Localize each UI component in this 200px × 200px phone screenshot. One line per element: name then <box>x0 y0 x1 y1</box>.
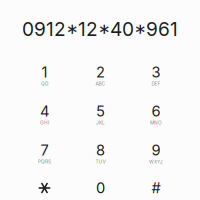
staticText: 6 <box>151 102 160 120</box>
staticText: 0912*12*40*961 <box>22 17 178 41</box>
staticText: PQRS <box>38 159 51 165</box>
staticText: TUV <box>95 159 105 165</box>
staticText: 4 <box>40 102 49 120</box>
staticText: GHI <box>40 120 49 126</box>
button[interactable]: 2 <box>73 57 127 93</box>
staticText: MNO <box>150 120 162 126</box>
button[interactable]: 8 <box>73 135 127 171</box>
staticText: 1 <box>41 63 47 81</box>
staticText: 7 <box>40 141 48 159</box>
button[interactable]: 6 <box>129 96 183 132</box>
staticText: 0 <box>96 179 105 197</box>
button[interactable]: 5 <box>73 96 127 132</box>
button[interactable]: 7 <box>17 135 71 171</box>
staticText: 3 <box>151 63 160 81</box>
staticText: 2 <box>96 63 105 81</box>
button[interactable]: Pound <box>129 176 183 200</box>
button[interactable]: 4 <box>17 96 71 132</box>
button[interactable]: 9 <box>129 135 183 171</box>
button[interactable]: 0912*12*40*961 <box>7 17 193 41</box>
staticText: DEF <box>151 81 160 87</box>
staticText: 8 <box>96 141 105 159</box>
staticText: WXYZ <box>149 159 163 165</box>
button[interactable]: Star <box>17 176 71 200</box>
button[interactable]: 3 <box>129 57 183 93</box>
staticText: QD <box>41 81 48 87</box>
button[interactable]: 1 <box>17 57 71 93</box>
staticText: JKL <box>96 120 105 126</box>
button[interactable]: 0 <box>73 176 127 200</box>
staticText: 5 <box>96 102 105 120</box>
staticText: 9 <box>151 141 160 159</box>
staticText: # <box>151 179 160 197</box>
staticText: ABC <box>95 81 105 87</box>
